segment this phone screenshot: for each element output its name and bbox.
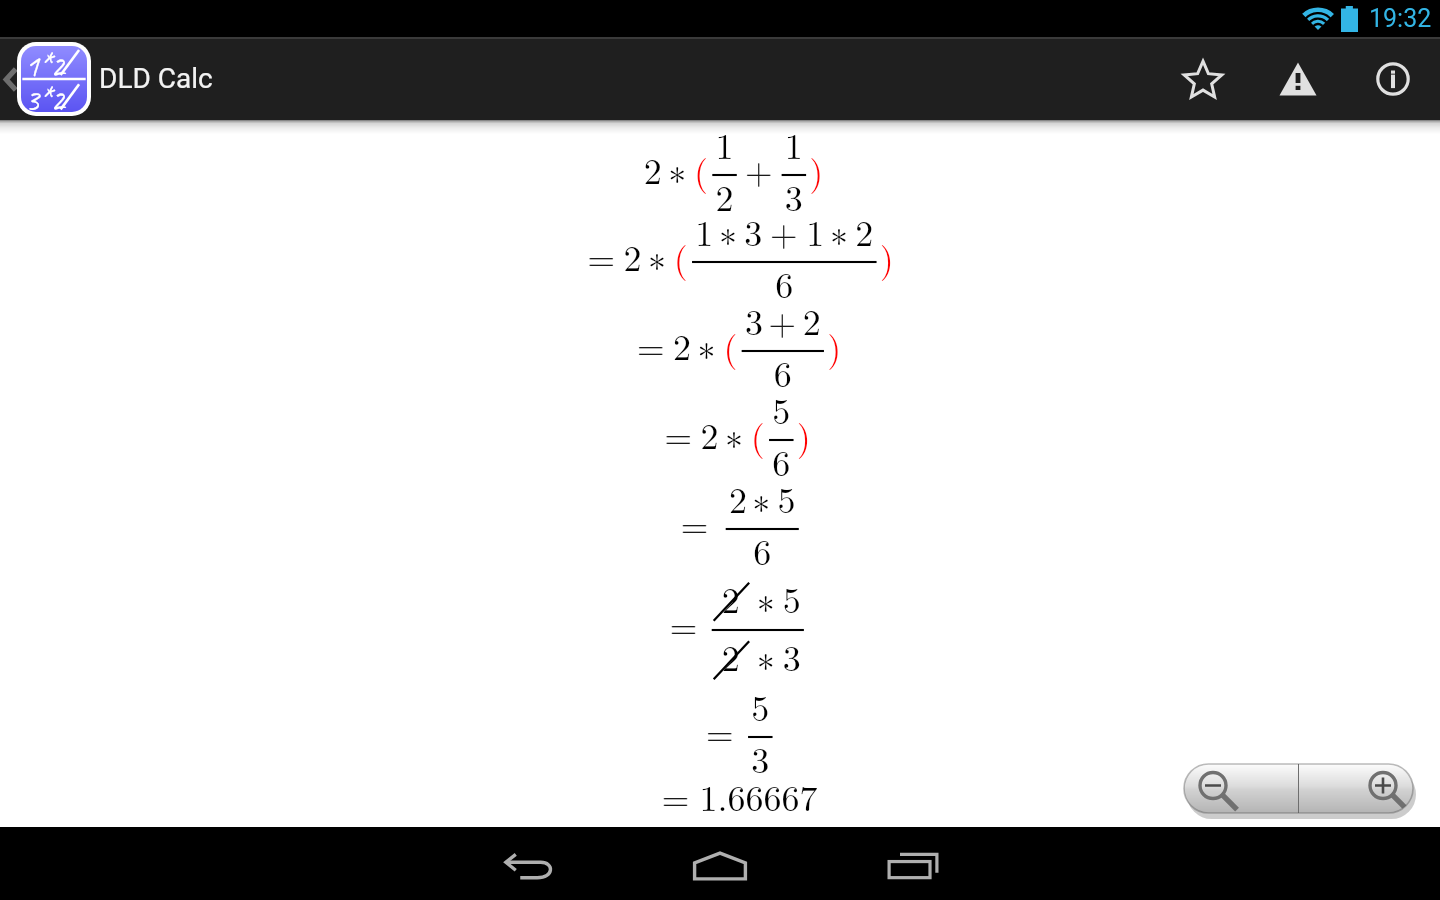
button[interactable]: Navigate up <box>0 37 95 120</box>
staticText: 19:32 <box>1369 4 1432 33</box>
staticText: DLD Calc <box>99 62 213 95</box>
button[interactable]: Info <box>1345 37 1440 120</box>
button[interactable]: Back <box>481 832 577 900</box>
button[interactable]: Favourite <box>1155 37 1250 120</box>
button[interactable]: Report problem <box>1250 37 1345 120</box>
button[interactable]: Recent apps <box>865 832 961 900</box>
button[interactable]: Home <box>672 832 768 900</box>
button[interactable]: Zoom out <box>1184 764 1298 813</box>
button[interactable]: Zoom in <box>1299 764 1413 813</box>
